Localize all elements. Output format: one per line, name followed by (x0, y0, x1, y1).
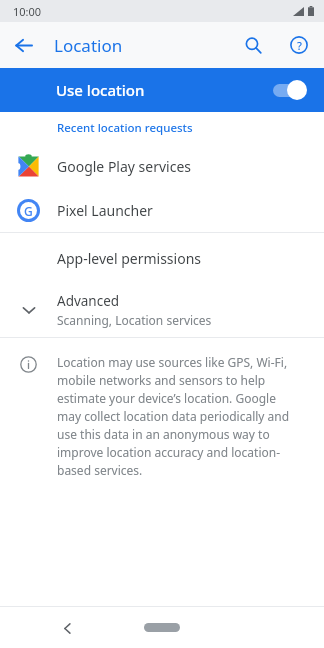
staticText: Advanced (57, 292, 120, 310)
staticText: 10:00 (13, 4, 42, 19)
staticText: Recent location requests (57, 120, 193, 136)
staticText: Google Play services (57, 157, 192, 176)
staticText: Pixel Launcher (57, 201, 153, 220)
staticText: G (24, 203, 33, 219)
button[interactable]: Help (276, 22, 322, 68)
button[interactable]: Search (230, 22, 276, 68)
button[interactable]: Use location (0, 68, 324, 112)
button[interactable]: Google Play services (0, 144, 324, 188)
staticText: Use location (56, 80, 145, 100)
staticText: App-level permissions (57, 249, 202, 268)
button[interactable]: Back (0, 22, 46, 68)
staticText: Location (54, 34, 123, 57)
staticText: Scanning, Location services (57, 312, 212, 328)
button[interactable]: Advanced (0, 283, 324, 337)
staticText: ? (297, 38, 302, 53)
button[interactable]: Home (144, 623, 180, 632)
button[interactable]: App-level permissions (0, 233, 324, 283)
staticText: Location may use sources like GPS, Wi‑Fi… (57, 354, 302, 479)
button[interactable]: Back (50, 611, 84, 645)
button[interactable]: G (0, 188, 324, 232)
